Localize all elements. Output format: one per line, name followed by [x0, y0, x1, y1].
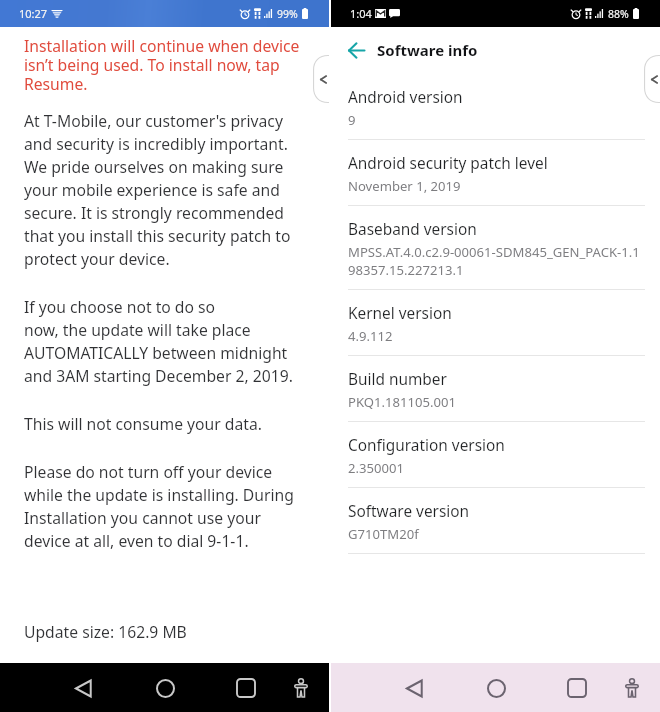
staticText: Android security patch level [348, 154, 548, 173]
staticText: Update size: 162.9 MB [24, 620, 187, 643]
staticText: MPSS.AT.4.0.c2.9-00061-SDM845_GEN_PACK-1… [348, 243, 640, 261]
button[interactable]: Kernel version [331, 290, 660, 356]
staticText: 98357.15.227213.1 [348, 261, 464, 279]
staticText: 2.350001 [348, 459, 404, 477]
staticText: November 1, 2019 [348, 177, 461, 195]
button[interactable]: Previous [313, 55, 329, 103]
staticText: Baseband version [348, 220, 477, 239]
button[interactable]: Back [60, 665, 106, 711]
button[interactable]: Android version [331, 74, 660, 140]
button[interactable]: Home [142, 665, 188, 711]
button[interactable]: Android security patch level [331, 140, 660, 206]
staticText: Software info [377, 40, 478, 60]
staticText: G710TM20f [348, 525, 419, 543]
staticText: If you choose not to do so now, the upda… [24, 295, 305, 387]
button[interactable]: Back [339, 33, 373, 67]
staticText: This will not consume your data. [24, 412, 262, 435]
button[interactable]: Back [391, 665, 437, 711]
button[interactable]: Baseband version [331, 206, 660, 290]
button[interactable]: Accessibility [609, 665, 655, 711]
button[interactable]: Software version [331, 488, 660, 554]
button[interactable]: Configuration version [331, 422, 660, 488]
staticText: PKQ1.181105.001 [348, 393, 456, 411]
button[interactable]: Recents [554, 665, 600, 711]
staticText: 88% [608, 7, 629, 21]
button[interactable]: Recents [223, 665, 269, 711]
staticText: Installation will continue when device i… [24, 37, 305, 94]
staticText: Configuration version [348, 436, 505, 455]
staticText: 1:04 [350, 6, 372, 21]
staticText: 10:27 [19, 6, 48, 21]
staticText: 4.9.112 [348, 327, 393, 345]
button[interactable]: Accessibility [278, 665, 324, 711]
staticText: Software version [348, 502, 470, 521]
staticText: 99% [277, 7, 298, 21]
staticText: Please do not turn off your device while… [24, 460, 305, 552]
staticText: 9 [348, 111, 356, 129]
button[interactable]: Previous [644, 55, 660, 103]
staticText: Kernel version [348, 304, 452, 323]
button[interactable]: Build number [331, 356, 660, 422]
staticText: Android version [348, 88, 463, 107]
staticText: Build number [348, 370, 447, 389]
button[interactable]: Home [473, 665, 519, 711]
staticText: At T-Mobile, our customer's privacy and … [24, 109, 305, 270]
